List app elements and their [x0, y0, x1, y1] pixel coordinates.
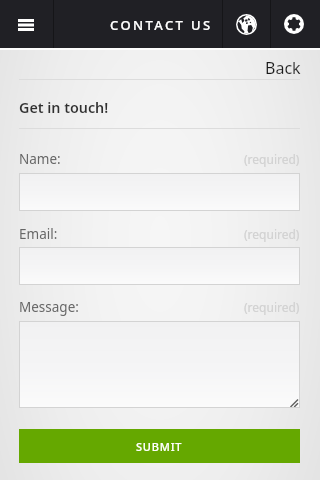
staticText: (required) — [244, 299, 300, 315]
staticText: (required) — [244, 226, 300, 242]
staticText: SUBMIT — [136, 439, 183, 454]
staticText: (required) — [244, 151, 300, 167]
button[interactable]: Settings — [271, 0, 317, 48]
button[interactable]: Language — [224, 0, 269, 48]
staticText: Back — [265, 57, 301, 79]
button[interactable]: Menu — [0, 0, 54, 48]
button[interactable]: SUBMIT — [19, 429, 300, 463]
button[interactable]: Back — [249, 53, 320, 83]
staticText: CONTACT US — [110, 16, 213, 34]
button[interactable] — [19, 247, 300, 285]
staticText: Message: — [19, 298, 79, 316]
button[interactable] — [19, 173, 300, 211]
button[interactable] — [19, 321, 300, 408]
staticText: Name: — [19, 150, 61, 168]
staticText: Email: — [19, 225, 58, 243]
staticText: Get in touch! — [19, 98, 109, 117]
